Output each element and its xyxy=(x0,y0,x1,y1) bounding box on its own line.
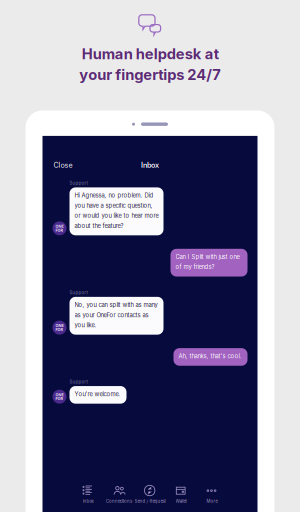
staticText: Support xyxy=(69,290,87,295)
button[interactable]: Wallet xyxy=(166,485,196,504)
button[interactable]: Close xyxy=(53,159,72,172)
staticText: Can I Split with just one of my friends? xyxy=(175,253,239,270)
staticText: Inbox xyxy=(141,161,159,170)
staticText: Human helpdesk at your fingertips 24/7 xyxy=(79,45,221,83)
staticText: Support xyxy=(69,379,87,384)
staticText: ONE xyxy=(55,392,63,397)
staticText: No, you can split with as many as your O… xyxy=(74,301,157,329)
staticText: You're welcome. xyxy=(74,391,120,398)
staticText: Wallet xyxy=(175,499,186,504)
button[interactable]: Inbox xyxy=(73,485,103,504)
staticText: Send / Request xyxy=(134,499,165,504)
staticText: More xyxy=(206,499,217,504)
staticText: Hi Agnessa, no problem. Did you have a s… xyxy=(74,192,158,229)
staticText: Connections xyxy=(106,499,132,504)
staticText: Support xyxy=(69,181,87,186)
staticText: Inbox xyxy=(82,499,93,504)
staticText: ONE xyxy=(55,323,63,328)
staticText: FOR xyxy=(55,327,63,332)
button[interactable]: More xyxy=(197,485,227,504)
button[interactable]: Connections xyxy=(104,485,134,504)
staticText: ONE xyxy=(55,224,63,229)
staticText: FOR xyxy=(55,228,63,233)
staticText: Close xyxy=(53,161,72,170)
staticText: Ah, thanks, that's cool. xyxy=(178,353,241,360)
button[interactable]: Send / Request xyxy=(135,485,165,504)
staticText: FOR xyxy=(55,396,63,401)
